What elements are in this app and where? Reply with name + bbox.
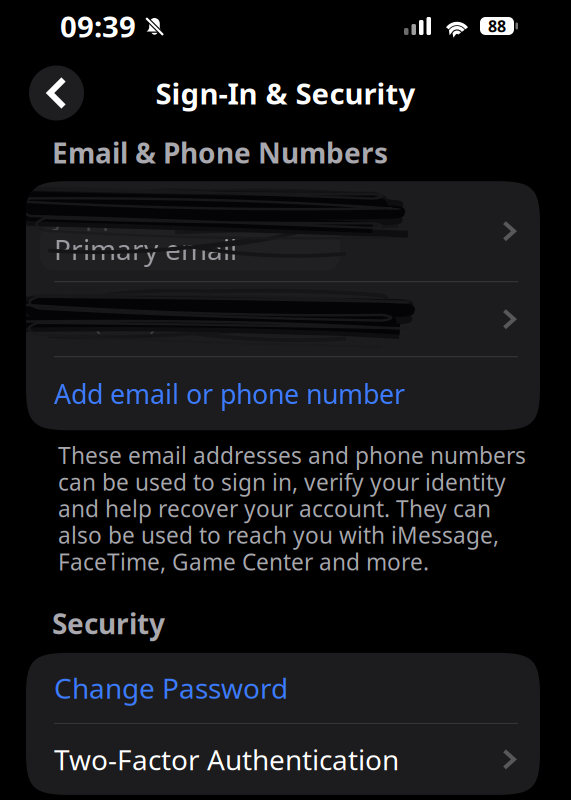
button[interactable]: Add email or phone number bbox=[26, 357, 540, 430]
staticText: +1 (408) 555-01 bbox=[54, 301, 253, 338]
button[interactable]: j.appleseed@me.com bbox=[26, 181, 540, 281]
staticText: Add email or phone number bbox=[54, 376, 405, 411]
staticText: Primary email bbox=[54, 231, 237, 268]
staticText: 88 bbox=[488, 15, 506, 37]
staticText: Sign-In & Security bbox=[155, 73, 415, 112]
staticText: These email addresses and phone numbers … bbox=[58, 440, 526, 577]
button[interactable]: Change Password bbox=[26, 653, 540, 723]
button[interactable]: +1 (408) 555-01 bbox=[26, 282, 540, 356]
staticText: Security bbox=[52, 605, 165, 642]
staticText: Change Password bbox=[54, 669, 288, 706]
button[interactable]: Back bbox=[29, 65, 84, 120]
staticText: 09:39 bbox=[60, 6, 136, 45]
staticText: Email & Phone Numbers bbox=[52, 134, 388, 171]
staticText: Two-Factor Authentication bbox=[54, 741, 399, 778]
button[interactable]: Two-Factor Authentication bbox=[26, 724, 540, 795]
staticText: j.appleseed@me.com bbox=[54, 195, 335, 232]
